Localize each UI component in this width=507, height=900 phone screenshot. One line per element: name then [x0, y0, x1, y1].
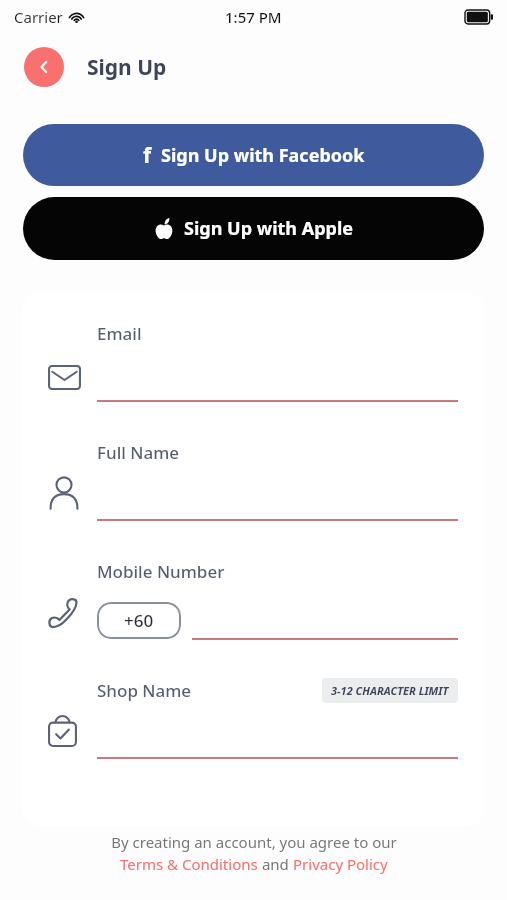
staticText: Email: [97, 322, 142, 345]
button[interactable]: Shop Name: [22, 640, 484, 759]
staticText: Shop Name: [97, 679, 192, 702]
button[interactable]: Sign Up with Apple: [23, 197, 484, 260]
staticText: Mobile Number: [97, 560, 225, 583]
staticText: Terms & Conditions: [120, 854, 258, 874]
staticText: Full Name: [97, 441, 180, 464]
button[interactable]: +60: [97, 602, 181, 639]
staticText: +60: [124, 609, 154, 632]
staticText: Carrier: [14, 7, 63, 27]
staticText: Sign Up with Facebook: [161, 143, 365, 168]
button[interactable]: Full Name: [22, 402, 484, 521]
button[interactable]: f: [23, 124, 484, 186]
staticText: 3-12 CHARACTER LIMIT: [331, 683, 449, 698]
button[interactable]: Email: [22, 293, 484, 402]
staticText: and: [258, 854, 293, 874]
button[interactable]: Privacy Policy: [293, 854, 388, 874]
button[interactable]: Mobile Number: [22, 521, 484, 640]
staticText: By creating an account, you agree to our: [111, 832, 397, 852]
staticText: f: [143, 141, 152, 170]
staticText: Privacy Policy: [293, 854, 388, 874]
button[interactable]: Back: [24, 47, 64, 87]
staticText: Sign Up: [87, 53, 167, 82]
staticText: 1:57 PM: [225, 7, 282, 27]
button[interactable]: Terms & Conditions: [120, 854, 258, 874]
staticText: Sign Up with Apple: [184, 216, 354, 241]
